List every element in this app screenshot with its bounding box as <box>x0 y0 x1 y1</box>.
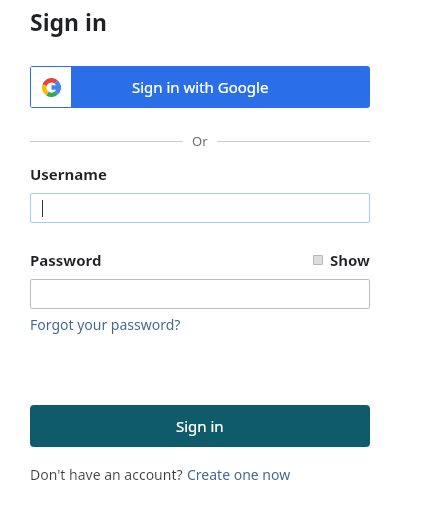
button[interactable]: Forgot your password? <box>30 315 181 334</box>
staticText: Password <box>30 250 102 270</box>
staticText: Sign in <box>176 416 224 436</box>
staticText: Or <box>192 132 208 150</box>
button[interactable]: Sign in with Google <box>30 66 370 108</box>
button[interactable]: Sign in <box>30 405 370 447</box>
staticText: Show <box>330 250 370 270</box>
button[interactable]: Create one now <box>187 465 291 484</box>
other: Google logo <box>42 78 61 97</box>
staticText: Sign in with Google <box>132 77 269 97</box>
staticText: Don't have an account? <box>30 465 187 484</box>
button[interactable]: Show <box>313 250 370 270</box>
staticText: Username <box>30 164 107 184</box>
button[interactable] <box>30 279 370 309</box>
staticText: Forgot your password? <box>30 315 181 334</box>
staticText: Create one now <box>187 465 291 484</box>
staticText: Sign in <box>30 6 107 37</box>
button[interactable] <box>30 193 370 223</box>
